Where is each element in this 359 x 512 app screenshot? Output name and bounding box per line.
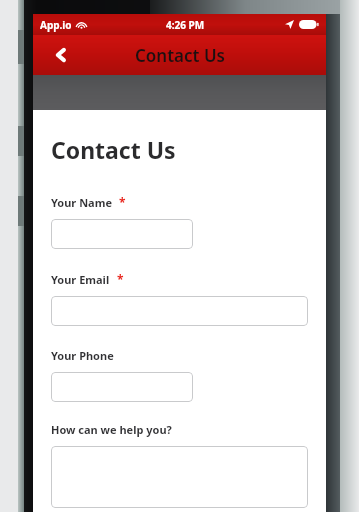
button[interactable] (51, 219, 193, 249)
staticText: * (119, 194, 126, 210)
staticText: Contact Us (51, 134, 176, 165)
staticText: 4:26 PM (166, 18, 205, 32)
button[interactable] (51, 446, 308, 508)
staticText: How can we help you? (51, 422, 172, 437)
staticText: Contact Us (135, 44, 225, 67)
staticText: Your Name (51, 195, 112, 210)
button[interactable] (51, 296, 308, 326)
button[interactable] (51, 372, 193, 402)
button[interactable]: Back (41, 35, 81, 75)
staticText: * (117, 271, 124, 287)
staticText: Your Email (51, 272, 110, 287)
staticText: Your Phone (51, 348, 114, 363)
staticText: App.io (40, 18, 72, 32)
